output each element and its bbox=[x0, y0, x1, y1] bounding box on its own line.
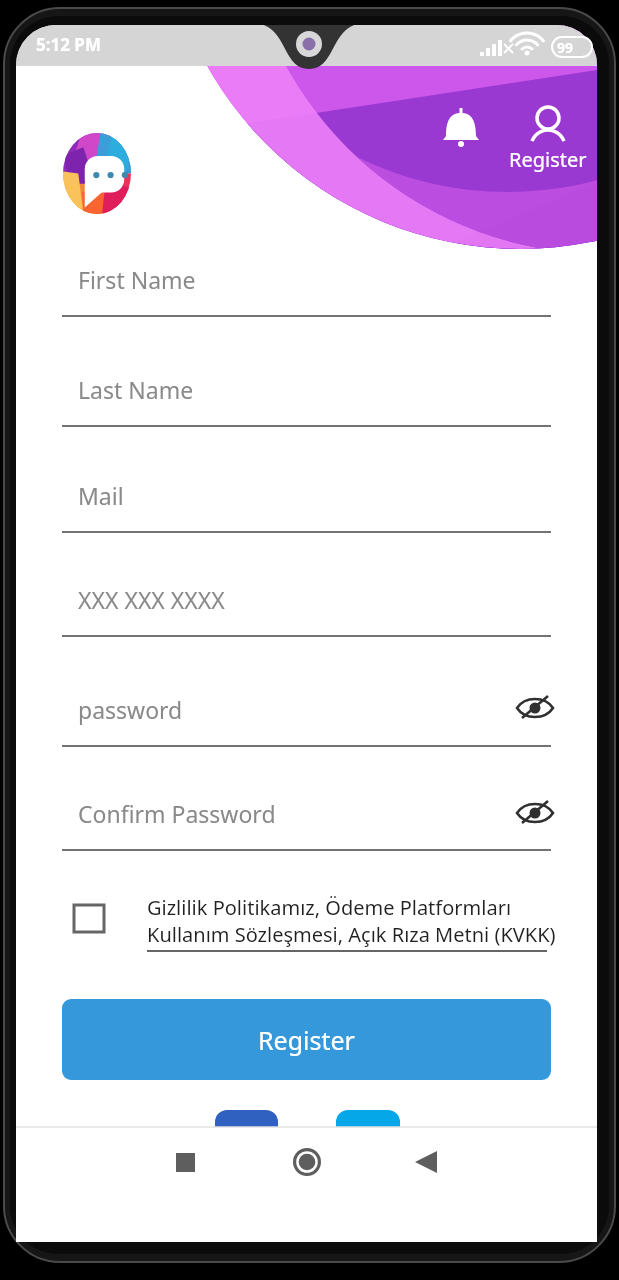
button[interactable]: Accept terms bbox=[74, 905, 104, 932]
staticText: Register bbox=[509, 146, 587, 173]
button[interactable]: Notifications bbox=[437, 106, 485, 154]
staticText: 99 bbox=[557, 38, 574, 57]
staticText: Mail bbox=[78, 480, 124, 511]
staticText: Last Name bbox=[78, 374, 194, 405]
staticText: 5:12 PM bbox=[36, 33, 101, 56]
button[interactable]: Sign in with Facebook bbox=[215, 1110, 278, 1150]
button[interactable]: First Name bbox=[62, 254, 551, 316]
button[interactable]: Recents bbox=[161, 1138, 209, 1186]
staticText: XXX XXX XXXX bbox=[78, 584, 225, 615]
staticText: Gizlilik Politikamız, Ödeme Platformları bbox=[147, 894, 512, 921]
button[interactable]: Back bbox=[402, 1138, 450, 1186]
button[interactable]: Register bbox=[62, 999, 551, 1080]
button[interactable]: Last Name bbox=[62, 364, 551, 426]
staticText: password bbox=[78, 694, 183, 725]
staticText: Register bbox=[258, 1023, 355, 1057]
staticText: Confirm Password bbox=[78, 798, 276, 829]
button[interactable]: Mail bbox=[62, 470, 551, 532]
button[interactable]: XXX XXX XXXX bbox=[62, 574, 551, 636]
button[interactable]: Home bbox=[283, 1138, 331, 1186]
button[interactable]: password bbox=[62, 684, 551, 746]
button[interactable]: Register bbox=[505, 104, 591, 173]
button[interactable]: Sign in with Twitter bbox=[336, 1110, 400, 1150]
staticText: Kullanım Sözleşmesi, Açık Rıza Metni (KV… bbox=[147, 921, 556, 948]
staticText: First Name bbox=[78, 264, 196, 295]
button[interactable]: Confirm Password bbox=[62, 788, 551, 850]
